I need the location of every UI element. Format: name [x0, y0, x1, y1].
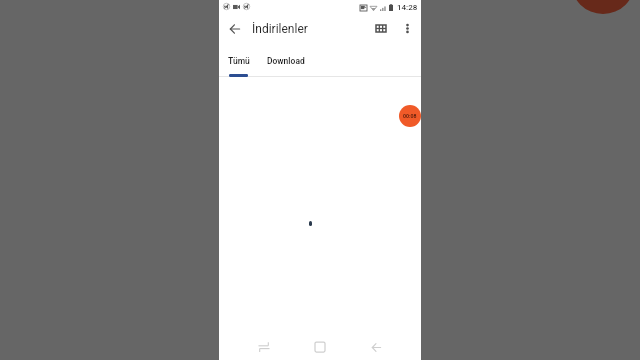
button[interactable]: Download — [256, 46, 316, 76]
staticText: Tümü — [228, 56, 250, 66]
staticText: İndirilenler — [252, 22, 308, 36]
button[interactable]: Screen recorder — [399, 105, 421, 127]
button[interactable]: Home — [308, 335, 332, 359]
button[interactable]: Tümü — [219, 46, 259, 76]
staticText: 14:28 — [397, 3, 418, 12]
staticText: Download — [267, 56, 305, 66]
button[interactable]: Back — [224, 18, 246, 40]
button[interactable]: Recent apps — [252, 335, 276, 359]
button[interactable]: More options — [398, 19, 416, 37]
button[interactable]: Grid view — [371, 18, 391, 38]
staticText: 00:08 — [403, 113, 417, 119]
button[interactable]: Back — [364, 335, 388, 359]
